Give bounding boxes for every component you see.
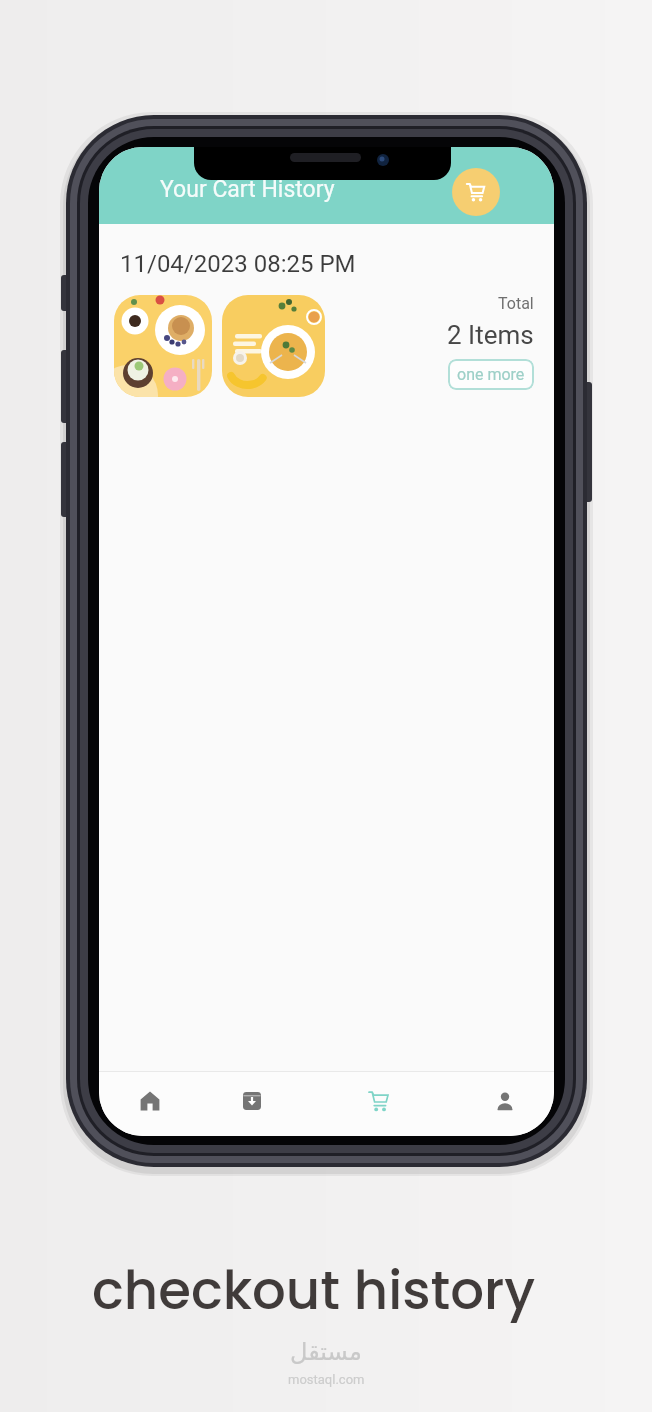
staticText: one more [457, 365, 525, 384]
staticText: Total [498, 294, 534, 313]
staticText: mostaql.com [288, 1372, 365, 1387]
staticText: checkout history [92, 1253, 536, 1327]
button[interactable] [228, 1077, 276, 1125]
staticText: مستقل [290, 1338, 362, 1366]
button[interactable]: one more [448, 359, 534, 390]
staticText: 2 Items [447, 320, 534, 350]
button[interactable] [126, 1077, 174, 1125]
staticText: 11/04/2023 08:25 PM [120, 250, 356, 278]
button[interactable] [222, 295, 325, 397]
button[interactable] [114, 295, 212, 397]
button[interactable] [481, 1077, 529, 1125]
button[interactable] [452, 168, 500, 216]
staticText: Your Cart History [160, 176, 335, 203]
button[interactable] [355, 1077, 403, 1125]
